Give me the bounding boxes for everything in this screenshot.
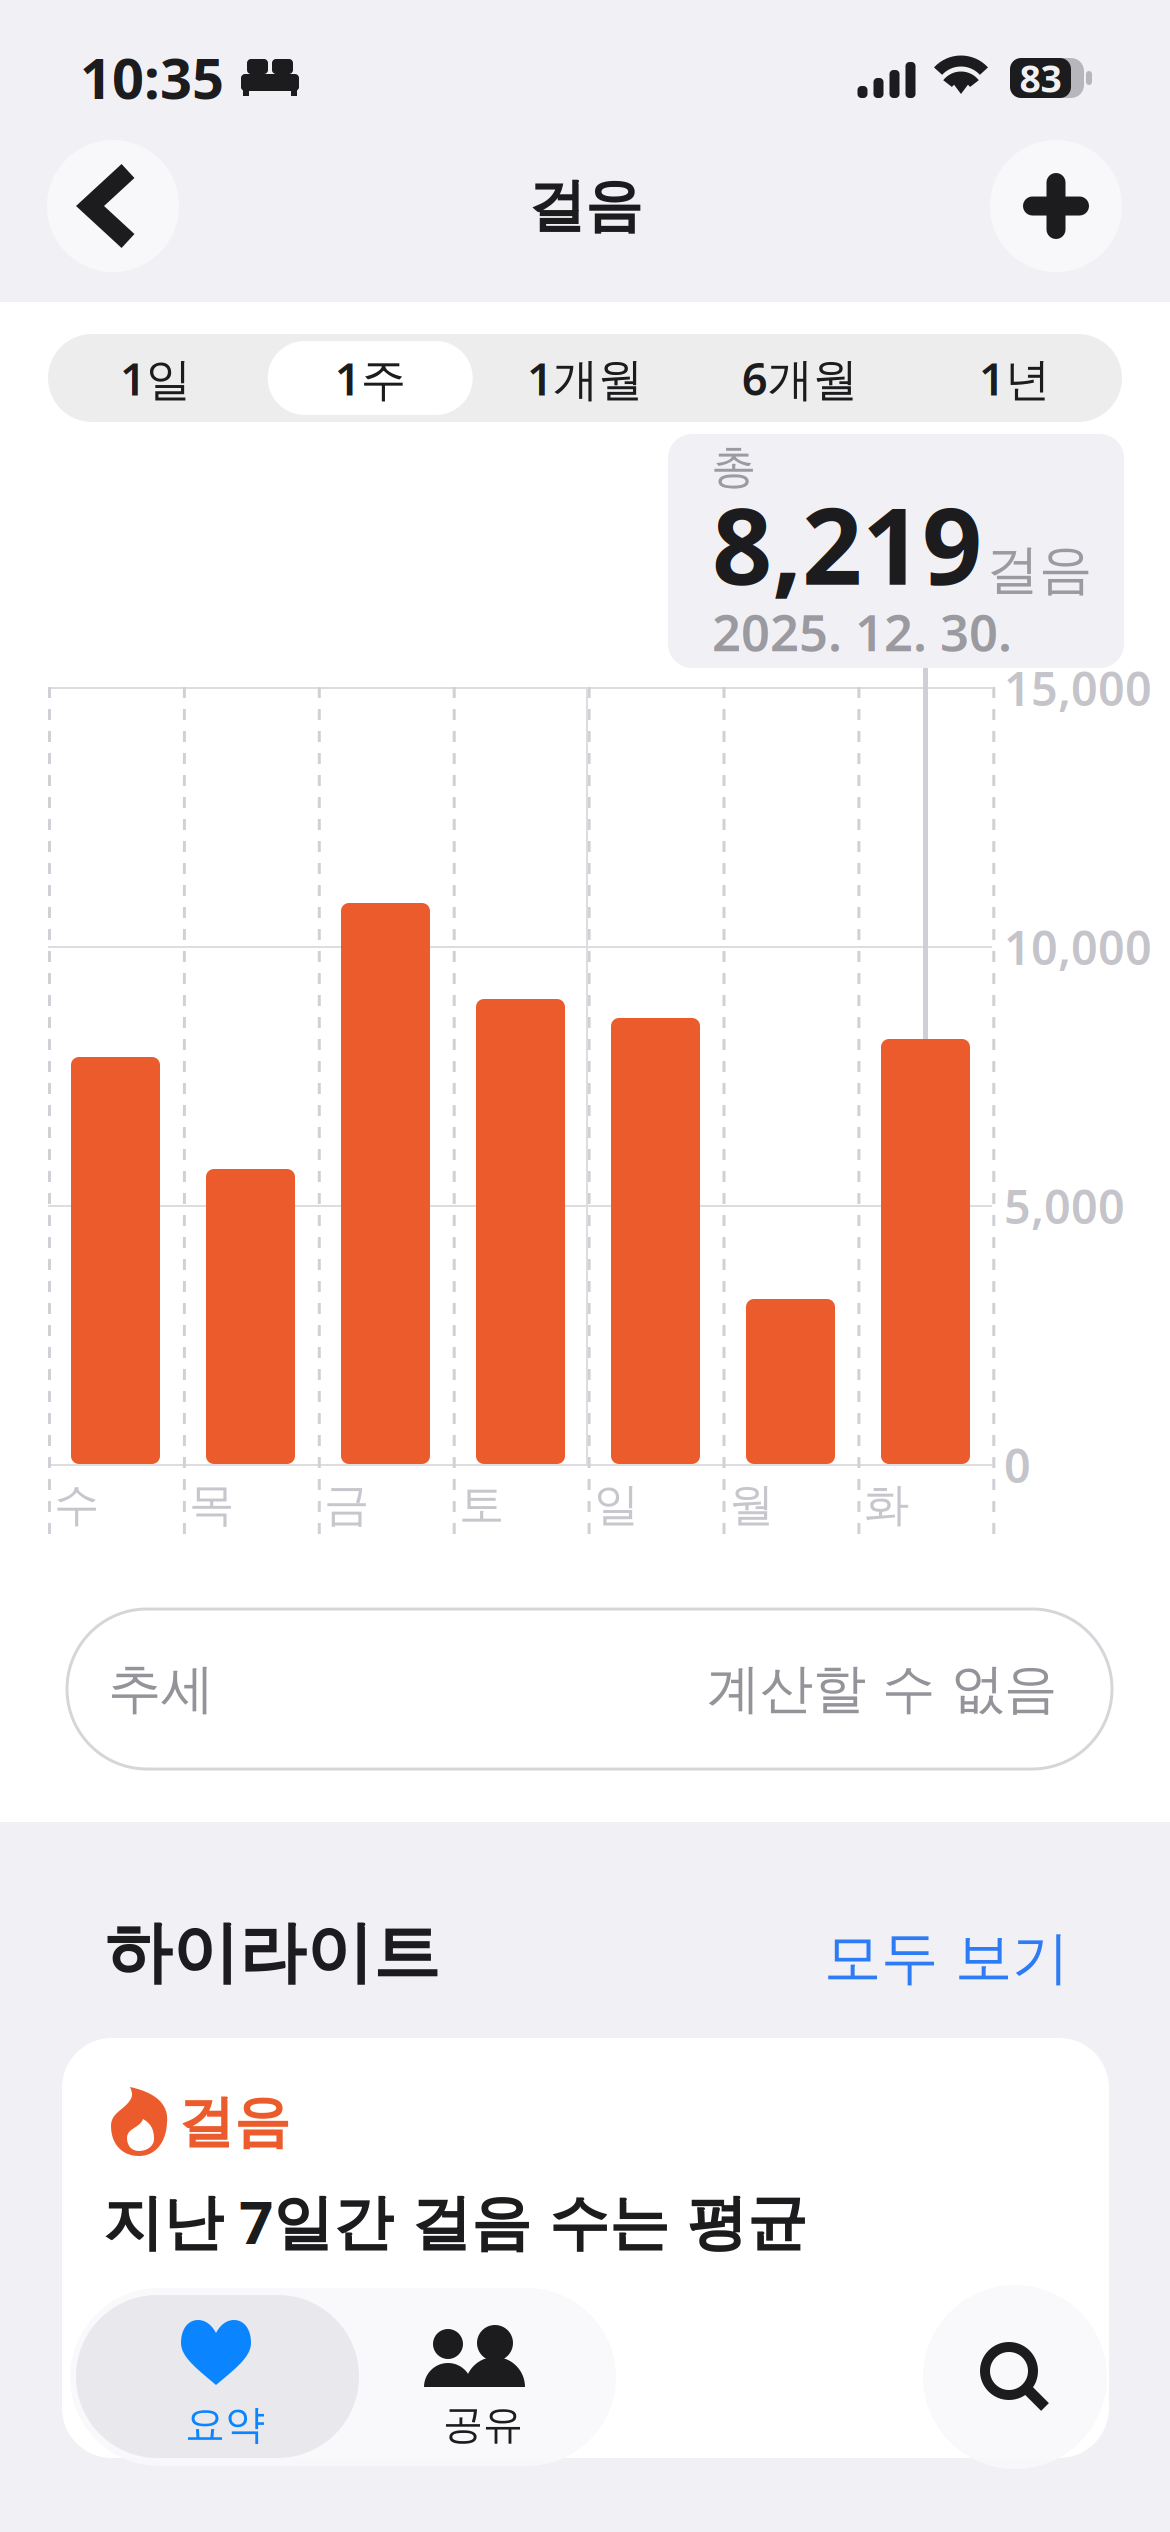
- staticText: 83: [1019, 53, 1061, 103]
- staticText: 1일: [120, 348, 191, 408]
- staticText: 모두 보기: [824, 1923, 1069, 1993]
- button[interactable]: Add: [990, 140, 1122, 272]
- button[interactable]: 1주: [263, 334, 478, 422]
- staticText: 금: [324, 1477, 369, 1533]
- button[interactable]: 모두 보기: [824, 1923, 1069, 1993]
- staticText: 걸음: [986, 537, 1092, 602]
- staticText: 토: [459, 1477, 504, 1533]
- button[interactable]: 1년: [907, 334, 1122, 422]
- staticText: 총: [711, 439, 756, 495]
- button[interactable]: Search: [923, 2285, 1107, 2469]
- staticText: 추세: [108, 1656, 214, 1722]
- staticText: 지난 7일간 걸음 수는 평균: [103, 2181, 807, 2261]
- staticText: 걸음: [178, 2088, 290, 2156]
- staticText: 1개월: [527, 348, 643, 408]
- staticText: 걸음: [528, 171, 642, 241]
- staticText: 10,000: [1004, 916, 1152, 978]
- staticText: 화: [864, 1477, 909, 1533]
- button[interactable]: 6개월: [692, 334, 907, 422]
- staticText: 1주: [335, 348, 406, 408]
- staticText: 6개월: [742, 348, 858, 408]
- staticText: 계산할 수 없음: [707, 1656, 1057, 1722]
- button[interactable]: 공유: [359, 2288, 622, 2466]
- button[interactable]: 요약: [76, 2288, 359, 2466]
- staticText: 2025. 12. 30.: [712, 598, 1012, 665]
- staticText: 1년: [979, 348, 1050, 408]
- staticText: 0: [1004, 1434, 1031, 1496]
- staticText: 10:35: [80, 40, 224, 114]
- staticText: 공유: [443, 2400, 523, 2449]
- staticText: 8,219: [712, 474, 982, 614]
- staticText: 목: [189, 1477, 234, 1533]
- staticText: 5,000: [1004, 1175, 1125, 1237]
- staticText: 일: [594, 1477, 639, 1533]
- staticText: 15,000: [1004, 657, 1152, 719]
- button[interactable]: 1개월: [478, 334, 692, 422]
- staticText: 수: [54, 1477, 99, 1533]
- staticText: 하이라이트: [105, 1912, 440, 1994]
- button[interactable]: 1일: [48, 334, 263, 422]
- button[interactable]: Back: [47, 140, 179, 272]
- button[interactable]: 추세: [67, 1609, 1112, 1769]
- staticText: 월: [729, 1477, 774, 1533]
- staticText: 요약: [185, 2400, 265, 2449]
